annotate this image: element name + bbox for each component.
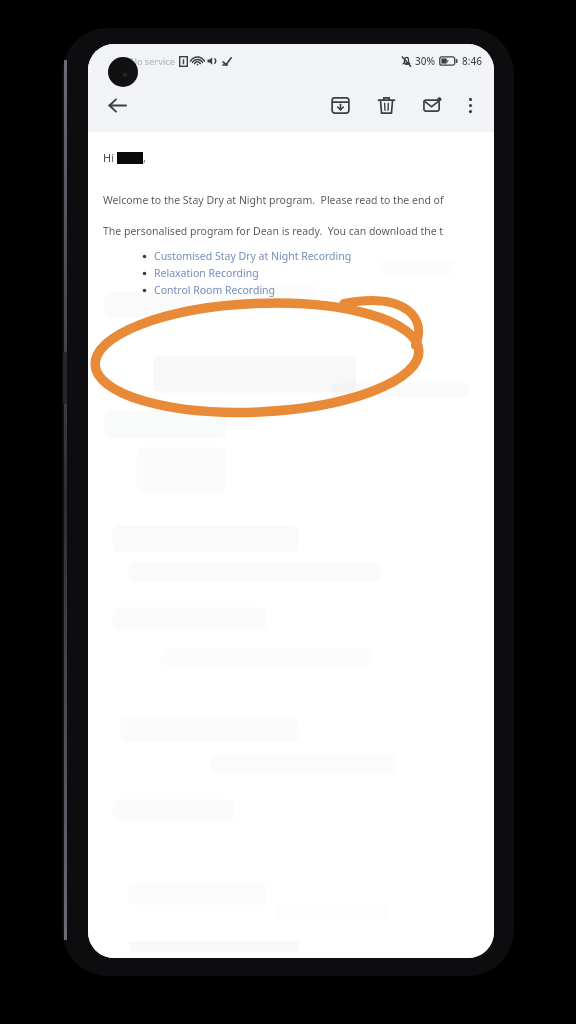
button[interactable]: Control Room Recording (140, 283, 276, 297)
button[interactable]: Relaxation Recording (140, 266, 259, 280)
staticText: No service (130, 55, 175, 67)
staticText: Customised Stay Dry at Night Recording (154, 249, 352, 263)
button[interactable]: More options (452, 87, 488, 123)
staticText: Welcome to the Stay Dry at Night program… (103, 193, 444, 207)
staticText: 8:46 (462, 54, 482, 68)
button[interactable]: Back (98, 86, 136, 124)
button[interactable]: Customised Stay Dry at Night Recording (140, 249, 352, 263)
staticText: Relaxation Recording (154, 266, 259, 280)
staticText: Control Room Recording (154, 283, 276, 297)
staticText: The personalised program for Dean is rea… (103, 224, 444, 238)
staticText: 30% (415, 54, 435, 68)
button[interactable]: Delete (368, 87, 404, 123)
staticText: Hi (103, 150, 117, 165)
staticText: , (143, 150, 146, 165)
button[interactable]: Archive (322, 87, 358, 123)
button[interactable]: Mark as unread (414, 87, 450, 123)
